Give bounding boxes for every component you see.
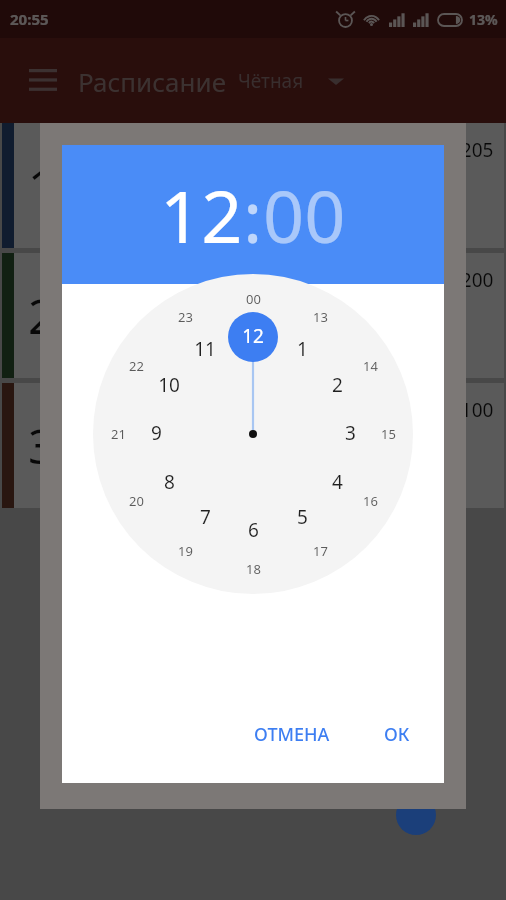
button[interactable]: 20 [128, 492, 144, 510]
staticText: 4 [332, 469, 343, 495]
button[interactable]: Select week [328, 73, 344, 89]
staticText: 13 [313, 308, 328, 326]
staticText: 8 [164, 469, 175, 495]
staticText: 20 [129, 492, 144, 510]
button[interactable]: 8 [163, 469, 175, 495]
staticText: 3205 [450, 137, 494, 163]
button[interactable]: 7 [199, 504, 211, 530]
button[interactable]: 15 [380, 425, 396, 443]
staticText: 23 [178, 308, 193, 326]
button[interactable]: 6 [247, 517, 259, 543]
staticText: ОТМЕНА [254, 722, 330, 747]
staticText: : [243, 166, 263, 264]
staticText: 1 [297, 336, 308, 362]
button[interactable]: 2 [2, 253, 504, 378]
staticText: 21 [111, 425, 126, 443]
button[interactable]: ОТМЕНА [244, 714, 340, 755]
button[interactable]: 14 [362, 357, 378, 375]
staticText: 17 [313, 542, 328, 560]
button[interactable]: 23 [177, 308, 193, 326]
button[interactable]: Open navigation menu [22, 60, 64, 102]
staticText: 15 [381, 425, 396, 443]
staticText: 9 [151, 420, 162, 446]
staticText: 13% [469, 10, 498, 29]
staticText: 18 [246, 560, 261, 578]
button[interactable]: 18 [245, 560, 261, 578]
staticText: 3 [28, 413, 56, 478]
button[interactable]: 19 [177, 542, 193, 560]
staticText: 5 [297, 504, 308, 530]
button[interactable]: 5 [296, 504, 308, 530]
button[interactable]: Чётная [238, 68, 304, 94]
staticText: 22 [129, 357, 144, 375]
button[interactable]: 00 [245, 290, 261, 308]
staticText: 12 [242, 323, 264, 349]
staticText: 20:55 [10, 9, 49, 29]
button[interactable]: 3 [2, 383, 504, 508]
button[interactable]: 1 [296, 336, 308, 362]
staticText: 10 [158, 372, 180, 398]
staticText: 3100 [450, 397, 494, 423]
staticText: 6 [248, 517, 259, 543]
button[interactable]: 3 [344, 420, 356, 446]
button[interactable]: 10 [157, 372, 181, 398]
button[interactable]: 17 [312, 542, 328, 560]
button[interactable]: 12 [160, 166, 243, 264]
staticText: 3200 [450, 267, 494, 293]
button[interactable]: Add [396, 795, 436, 835]
staticText: 2 [28, 283, 56, 348]
staticText: 14 [363, 357, 378, 375]
button[interactable]: 9 [150, 420, 162, 446]
button[interactable]: 16 [362, 492, 378, 510]
staticText: 16 [363, 492, 378, 510]
button[interactable]: 2 [331, 372, 343, 398]
button[interactable]: 13 [312, 308, 328, 326]
button[interactable]: 1 [2, 123, 504, 248]
staticText: 3 [345, 420, 356, 446]
staticText: 7 [200, 504, 211, 530]
staticText: 19 [178, 542, 193, 560]
staticText: Расписание [78, 64, 226, 99]
staticText: 2 [332, 372, 343, 398]
staticText: 00 [246, 290, 261, 308]
button[interactable]: 22 [128, 357, 144, 375]
button[interactable]: 00 [263, 166, 346, 264]
button[interactable]: ОК [374, 714, 420, 755]
button[interactable]: 12 [241, 323, 265, 349]
button[interactable]: 4 [331, 469, 343, 495]
button[interactable]: 21 [110, 425, 126, 443]
button[interactable]: 11 [193, 336, 217, 362]
staticText: 12 [160, 166, 243, 264]
staticText: ОК [384, 722, 410, 747]
staticText: 00 [263, 166, 346, 264]
staticText: 11 [194, 336, 216, 362]
staticText: 1 [28, 153, 56, 218]
staticText: Чётная [238, 68, 304, 94]
